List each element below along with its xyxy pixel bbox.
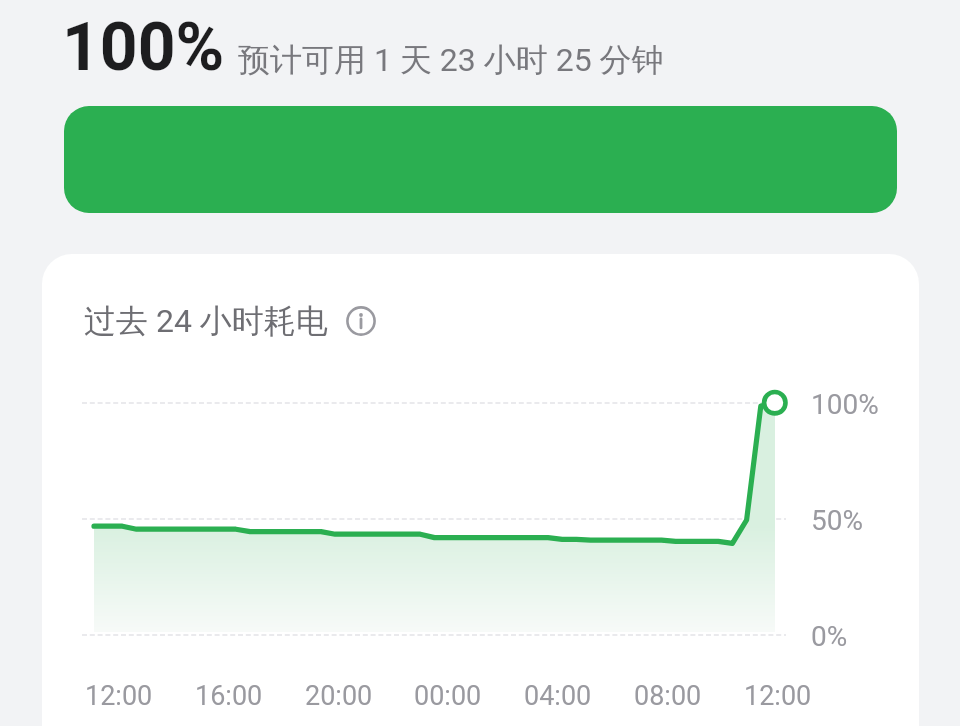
staticText: 00:00 xyxy=(414,680,482,712)
staticText: 04:00 xyxy=(524,680,592,712)
button[interactable]: 过去 24 小时耗电 xyxy=(84,301,376,341)
staticText: 50% xyxy=(811,504,863,537)
staticText: 20:00 xyxy=(305,680,373,712)
staticText: 100% xyxy=(62,9,225,86)
button[interactable]: Info about battery usage xyxy=(346,306,376,336)
staticText: 过去 24 小时耗电 xyxy=(84,301,328,341)
staticText: 0% xyxy=(811,620,848,653)
staticText: 12:00 xyxy=(744,680,812,712)
staticText: 16:00 xyxy=(195,680,263,712)
button[interactable]: Battery level 100 percent xyxy=(64,106,897,213)
staticText: 预计可用 1 天 23 小时 25 分钟 xyxy=(238,40,664,80)
staticText: 08:00 xyxy=(634,680,702,712)
staticText: 12:00 xyxy=(85,680,153,712)
staticText: 100% xyxy=(811,388,879,421)
